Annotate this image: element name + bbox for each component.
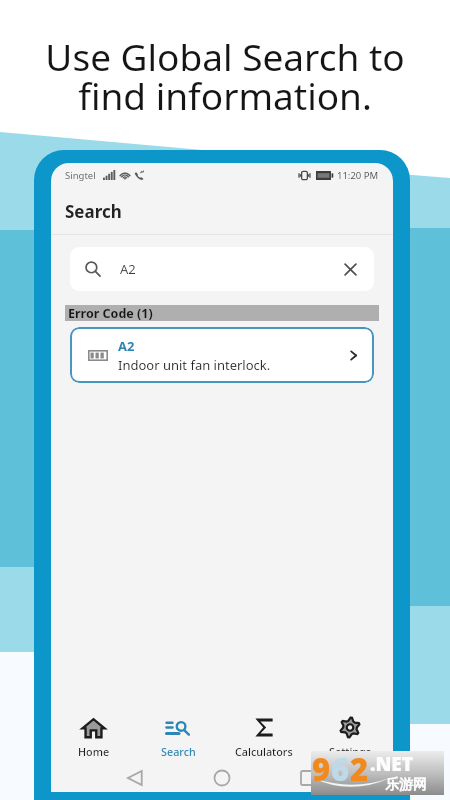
staticText: Indoor unit fan interlock. xyxy=(118,356,271,374)
button[interactable]: Search xyxy=(136,714,221,762)
staticText: Error Code (1) xyxy=(68,305,153,321)
staticText: Calculators xyxy=(235,744,293,759)
staticText: 11:20 PM xyxy=(337,169,379,182)
button[interactable]: Home xyxy=(203,764,241,792)
button[interactable]: Recent apps xyxy=(289,764,327,792)
staticText: Use Global Search to find information. xyxy=(45,31,405,120)
button[interactable]: A2 xyxy=(70,247,374,291)
staticText: A2 xyxy=(118,337,135,355)
button[interactable]: Home xyxy=(51,714,136,762)
button[interactable]: Calculators xyxy=(221,714,307,762)
staticText: 9 xyxy=(312,748,331,790)
staticText: Search xyxy=(65,200,122,223)
button[interactable]: Back xyxy=(116,764,154,792)
button[interactable]: A2 xyxy=(70,327,374,383)
staticText: A2 xyxy=(120,260,136,278)
staticText: Settings xyxy=(329,744,372,759)
staticText: 2 xyxy=(350,748,369,790)
staticText: 6 xyxy=(331,748,350,790)
staticText: .NET xyxy=(370,751,413,777)
staticText: Singtel xyxy=(65,169,96,182)
staticText: 乐游网 xyxy=(385,776,427,794)
staticText: Search xyxy=(161,744,196,759)
button[interactable]: Clear search xyxy=(343,262,358,277)
button[interactable]: Settings xyxy=(307,714,393,762)
staticText: Home xyxy=(78,744,110,759)
